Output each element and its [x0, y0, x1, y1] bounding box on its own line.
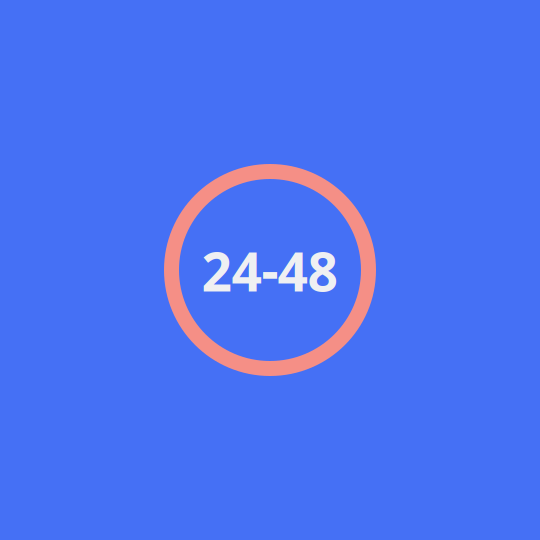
staticText: 24-48 — [201, 234, 338, 306]
button[interactable]: 24-48 hours — [171, 171, 368, 368]
